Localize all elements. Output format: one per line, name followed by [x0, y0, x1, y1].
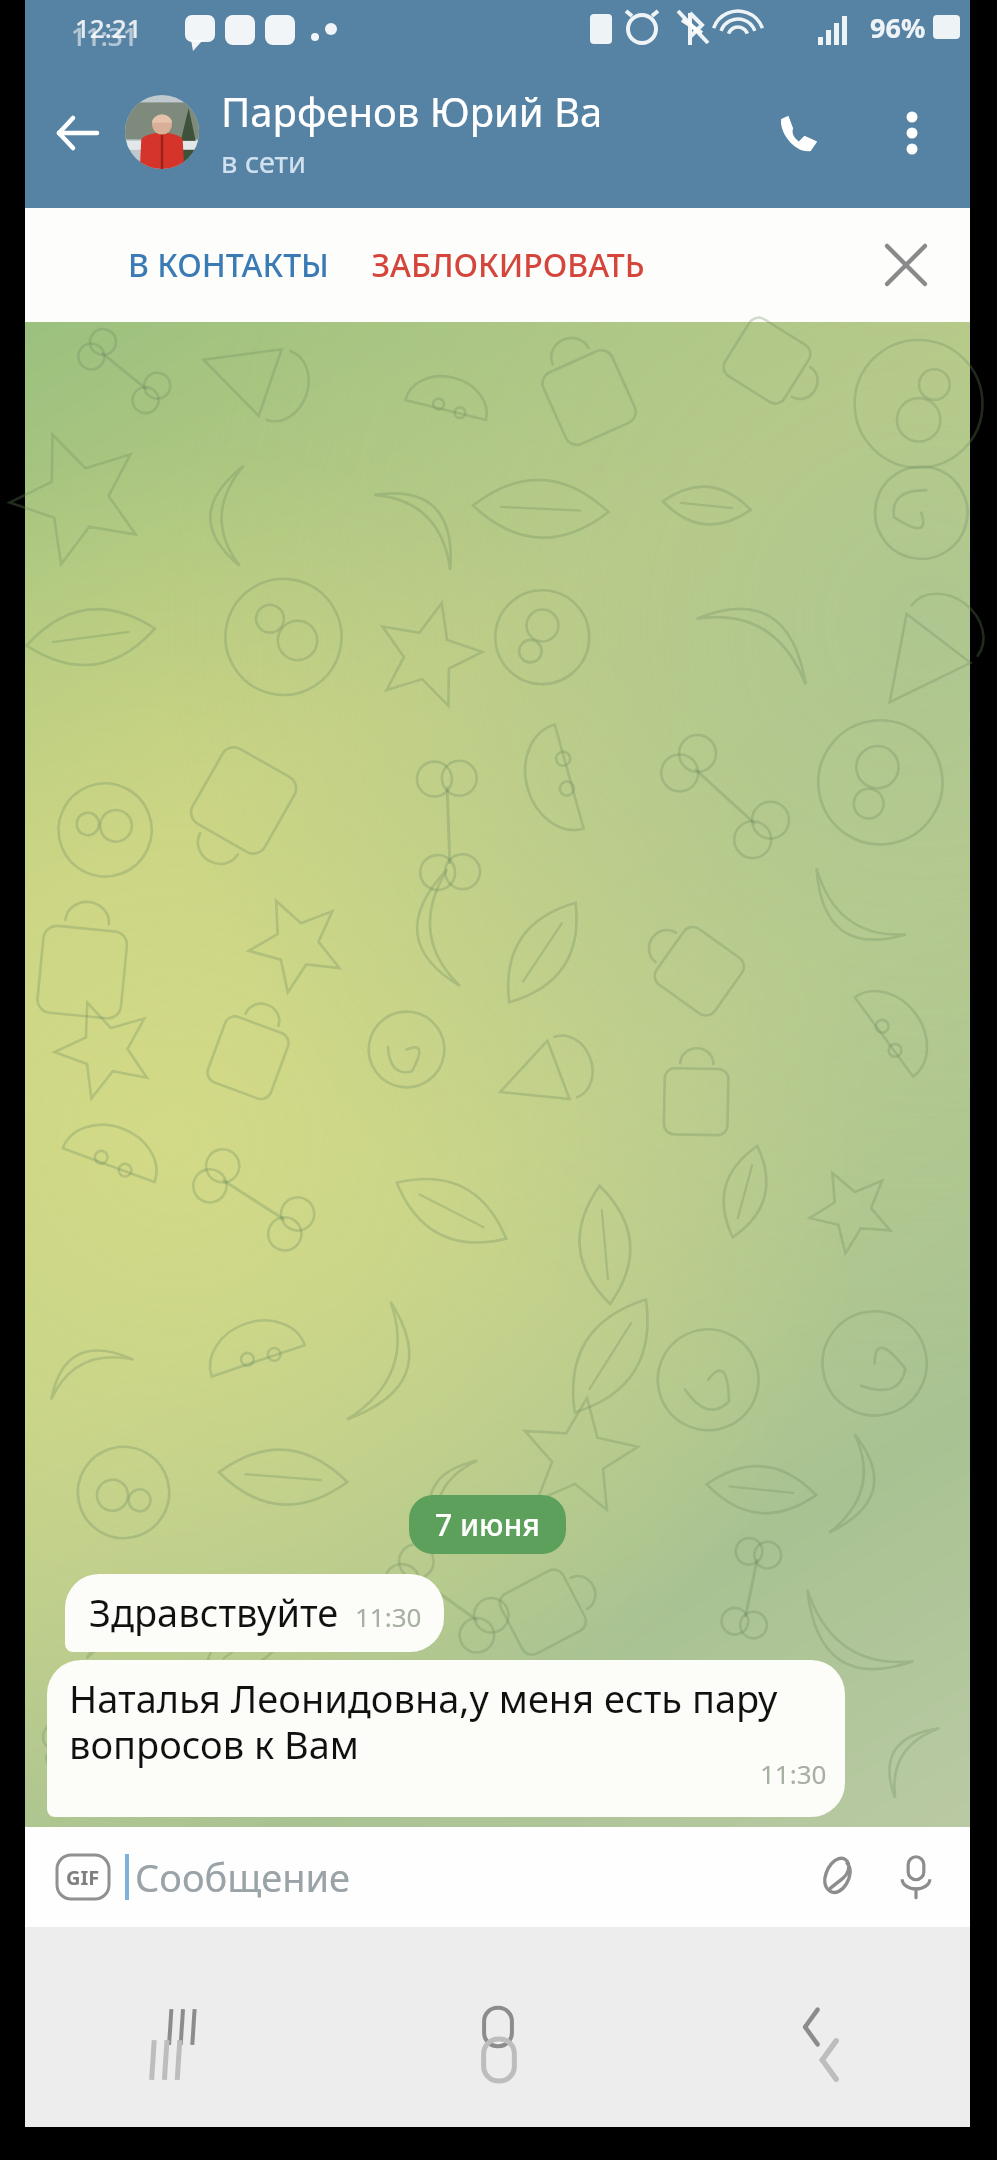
button[interactable]: Recents	[0, 1970, 333, 2150]
button[interactable]: В КОНТАКТЫ	[83, 208, 373, 322]
staticText: GIF	[66, 1864, 100, 1891]
button[interactable]: GIF	[55, 1853, 111, 1901]
staticText: 11:30	[355, 1599, 422, 1634]
button[interactable]: Attach	[796, 1837, 876, 1917]
button[interactable]: Back	[655, 1927, 970, 2127]
button[interactable]: Dismiss	[865, 224, 947, 306]
button[interactable]: Home	[340, 1927, 655, 2127]
staticText: 11:30	[760, 1756, 827, 1791]
button[interactable]: 7 июня	[409, 1495, 566, 1554]
button[interactable]: ЗАБЛОКИРОВАТЬ	[343, 208, 673, 322]
staticText: в сети	[221, 142, 307, 181]
button[interactable]: Здравствуйте	[65, 1574, 444, 1652]
staticText: В КОНТАКТЫ	[128, 243, 329, 287]
button[interactable]: Voice message	[876, 1837, 956, 1917]
button[interactable]: Call	[765, 102, 831, 168]
staticText: 12:21	[75, 10, 142, 45]
staticText: Здравствуйте	[89, 1586, 339, 1638]
button[interactable]: Парфенов Юрий Ва	[125, 80, 745, 184]
staticText: Наталья Леонидовна,у меня есть пару вопр…	[69, 1672, 778, 1770]
staticText: ЗАБЛОКИРОВАТЬ	[371, 243, 645, 287]
button[interactable]: Back	[665, 1970, 997, 2150]
button[interactable]: Home	[333, 1970, 665, 2150]
button[interactable]: Recents	[25, 1927, 340, 2127]
staticText: Сообщение	[135, 1851, 351, 1903]
staticText: 96%	[870, 9, 926, 46]
button[interactable]: More options	[881, 102, 943, 164]
staticText: 7 июня	[435, 1504, 540, 1545]
staticText: Парфенов Юрий Ва	[221, 84, 603, 138]
staticText: 11:31	[71, 18, 138, 53]
button[interactable]: Сообщение	[135, 1851, 796, 1903]
button[interactable]: Наталья Леонидовна,у меня есть пару вопр…	[47, 1660, 845, 1817]
button[interactable]: Back	[45, 102, 107, 164]
